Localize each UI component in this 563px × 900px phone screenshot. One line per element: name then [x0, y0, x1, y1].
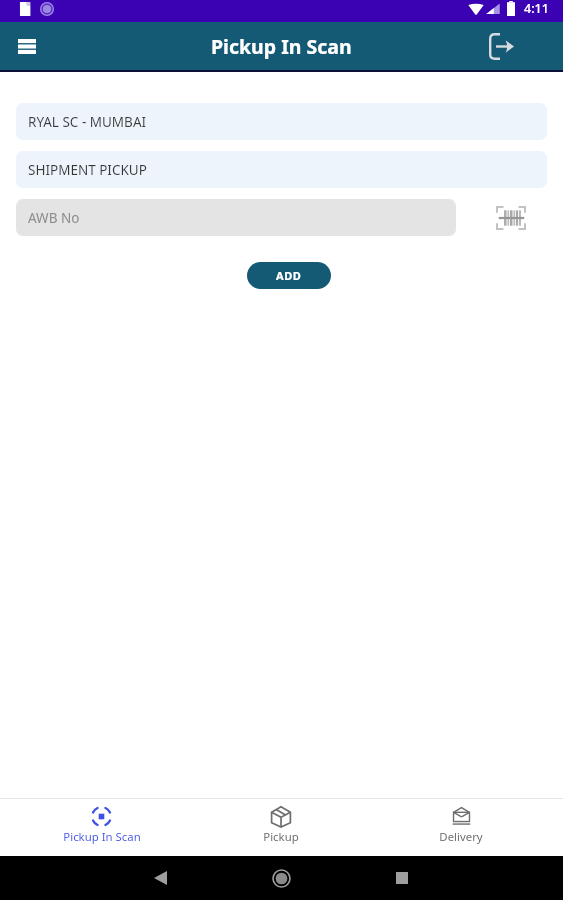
staticText: ADD [276, 268, 302, 283]
staticText: Delivery [439, 829, 483, 845]
button[interactable]: SHIPMENT PICKUP [16, 151, 547, 188]
button[interactable]: AWB No [16, 199, 456, 236]
button[interactable]: Logout [481, 26, 521, 66]
staticText: Pickup In Scan [211, 33, 352, 60]
staticText: 4:11 [524, 0, 549, 17]
button[interactable]: Pickup [191, 799, 371, 856]
button[interactable]: RYAL SC - MUMBAI [16, 103, 547, 140]
button[interactable]: Pickup In Scan [12, 799, 191, 856]
button[interactable]: Menu [7, 26, 47, 66]
staticText: SHIPMENT PICKUP [28, 161, 147, 179]
button[interactable]: Scan barcode [493, 200, 529, 236]
staticText: Pickup In Scan [63, 829, 141, 845]
staticText: RYAL SC - MUMBAI [28, 113, 147, 131]
staticText: Pickup [263, 829, 299, 845]
staticText: AWB No [28, 209, 80, 227]
button[interactable]: ADD [247, 262, 331, 289]
button[interactable]: Delivery [371, 799, 551, 856]
